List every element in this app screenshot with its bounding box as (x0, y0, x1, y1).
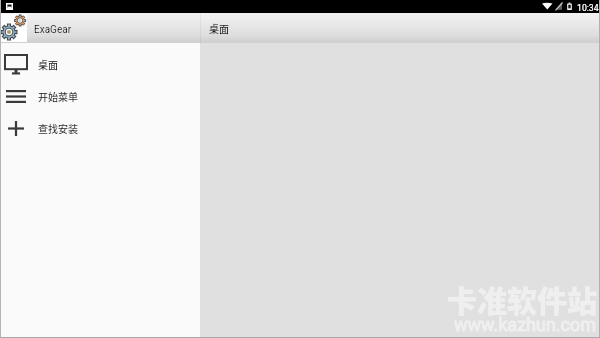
button[interactable]: 桌面 (200, 13, 600, 43)
staticText: 开始菜单 (38, 89, 78, 103)
button[interactable]: 查找安装 (0, 112, 200, 144)
staticText: www.kazhun.com (454, 314, 597, 335)
staticText: 卡准软件站 (447, 277, 597, 320)
button[interactable]: 开始菜单 (0, 80, 200, 112)
staticText: 桌面 (38, 57, 58, 71)
button[interactable]: 桌面 (0, 48, 200, 80)
staticText: 查找安装 (38, 121, 78, 135)
staticText: ExaGear (34, 24, 72, 36)
staticText: 桌面 (209, 21, 229, 35)
button[interactable]: ExaGear (0, 13, 200, 43)
staticText: 10:34 (577, 3, 599, 13)
